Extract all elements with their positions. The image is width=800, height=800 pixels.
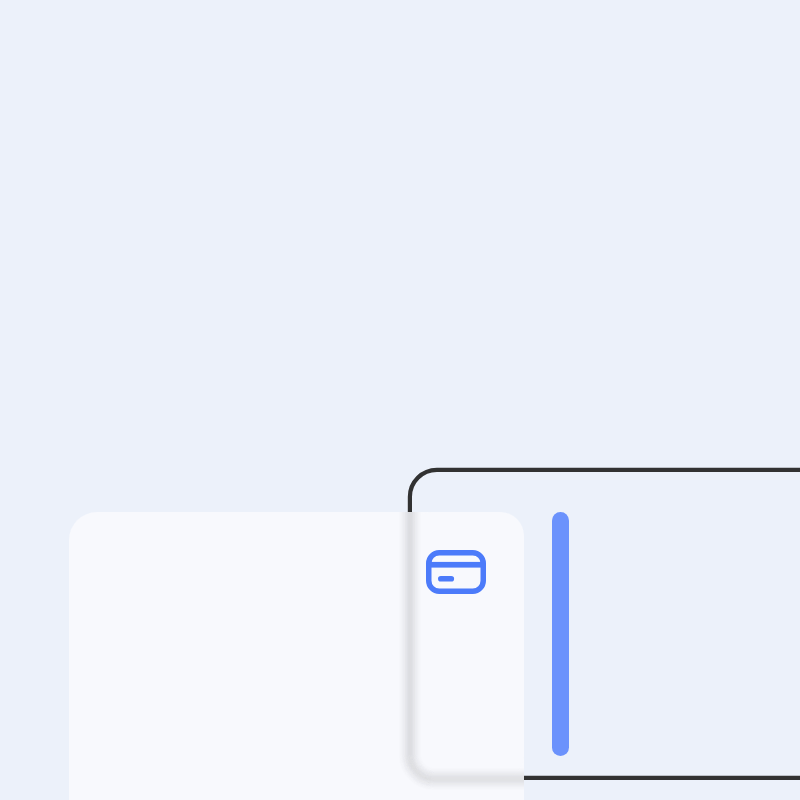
button[interactable]: Account card: [69, 512, 524, 800]
button[interactable]: Payment card: [409, 512, 524, 779]
button[interactable]: Progress indicator: [552, 512, 569, 756]
